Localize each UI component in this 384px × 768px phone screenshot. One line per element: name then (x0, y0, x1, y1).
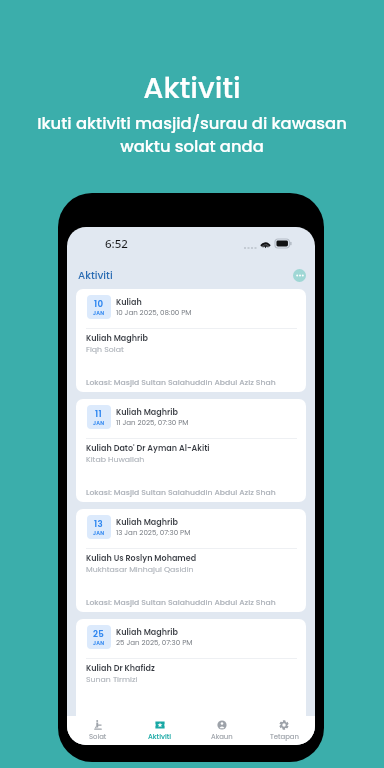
staticText: Kuliah Dato' Dr Ayman Al-Akiti (86, 443, 210, 454)
button[interactable]: Tetapan (253, 716, 315, 745)
staticText: 25 Jan 2025, 07:30 PM (116, 638, 193, 648)
staticText: Solat (89, 732, 107, 742)
staticText: 11 Jan 2025, 07:30 PM (116, 418, 189, 428)
staticText: JAN (93, 530, 105, 537)
staticText: Mukhtasar Minhajul Qasidin (86, 564, 194, 575)
button[interactable]: Aktiviti (129, 716, 191, 745)
staticText: Aktiviti (148, 732, 172, 742)
staticText: Lokasi: Masjid Sultan Salahuddin Abdul A… (86, 716, 276, 727)
button[interactable]: 10 (76, 289, 306, 392)
staticText: Kuliah Maghrib (116, 517, 178, 528)
staticText: Fiqh Solat (86, 344, 124, 355)
button[interactable]: Akaun (191, 716, 253, 745)
staticText: Lokasi: Masjid Sultan Salahuddin Abdul A… (86, 377, 276, 388)
staticText: Lokasi: Masjid Sultan Salahuddin Abdul A… (86, 597, 276, 608)
staticText: Ikuti aktiviti masjid/surau di kawasan w… (0, 112, 384, 157)
staticText: JAN (93, 420, 105, 427)
staticText: 11 (95, 408, 103, 420)
staticText: Kitab Huwallah (86, 454, 145, 465)
staticText: Kuliah Maghrib (116, 407, 178, 418)
staticText: 6:52 (105, 236, 128, 252)
staticText: Kuliah Maghrib (116, 627, 178, 638)
staticText: Sunan Tirmizi (86, 674, 138, 685)
staticText: Lokasi: Masjid Sultan Salahuddin Abdul A… (86, 487, 276, 498)
staticText: Aktiviti (78, 268, 113, 282)
staticText: 10 Jan 2025, 08:00 PM (116, 308, 192, 318)
staticText: JAN (93, 640, 105, 647)
staticText: Tetapan (270, 732, 299, 742)
button[interactable]: Solat (67, 716, 129, 745)
staticText: Kuliah Maghrib (86, 333, 148, 344)
staticText: Kuliah Dr Khafidz (86, 663, 155, 674)
staticText: 25 (93, 628, 105, 640)
staticText: 13 Jan 2025, 07:30 PM (116, 528, 191, 538)
staticText: Kuliah Us Roslyn Mohamed (86, 553, 197, 564)
staticText: 10 (94, 298, 104, 310)
staticText: Akaun (211, 732, 233, 742)
button[interactable]: 25 (76, 619, 306, 731)
button[interactable]: 13 (76, 509, 306, 612)
staticText: 13 (94, 518, 104, 530)
staticText: JAN (93, 310, 105, 317)
staticText: Kuliah (116, 297, 142, 308)
button[interactable]: 11 (76, 399, 306, 502)
button[interactable]: More options (293, 269, 306, 282)
staticText: Aktiviti (0, 68, 384, 109)
